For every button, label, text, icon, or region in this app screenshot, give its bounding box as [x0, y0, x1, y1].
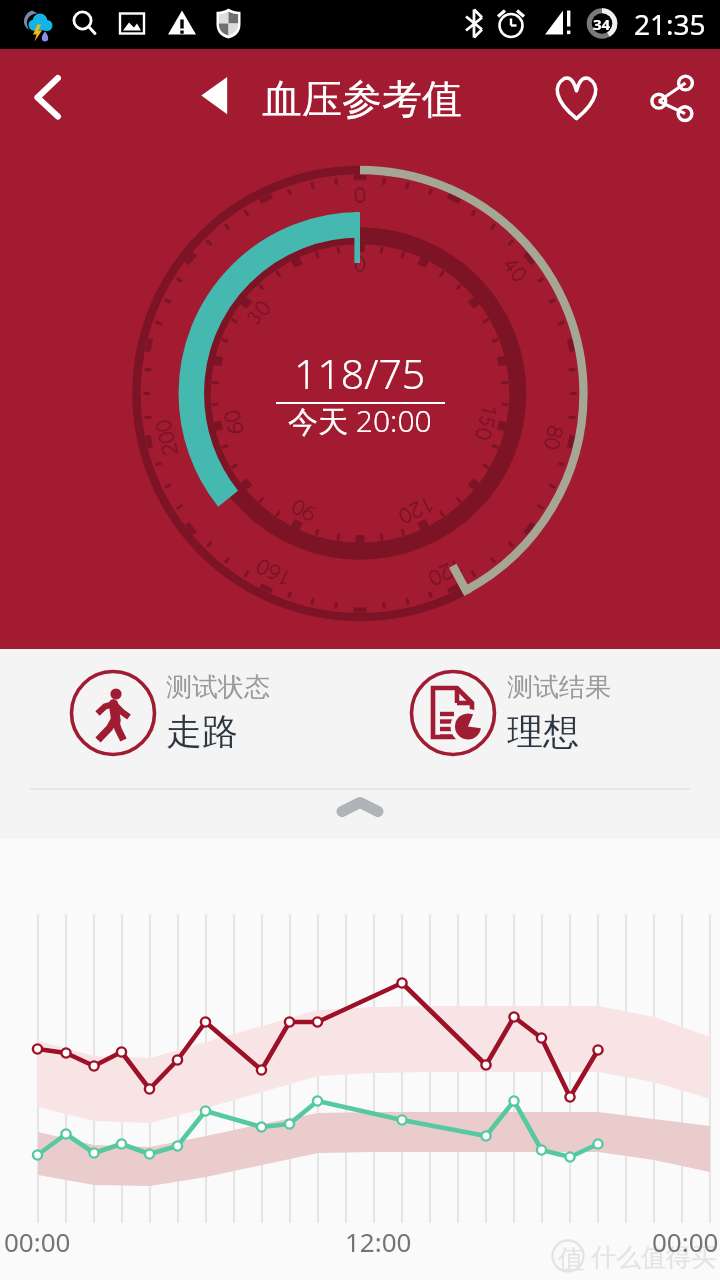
button[interactable]: 测试状态: [65, 665, 161, 761]
staticText: 走路: [166, 709, 238, 754]
button[interactable]: 血压参考值: [190, 49, 475, 149]
staticText: 12:00: [345, 1224, 412, 1259]
staticText: 测试结果: [507, 671, 611, 704]
staticText: 118/75: [294, 345, 426, 401]
staticText: 血压参考值: [262, 74, 462, 124]
button[interactable]: Share: [627, 49, 717, 149]
staticText: 00:00: [652, 1224, 719, 1259]
button[interactable]: Collapse: [320, 792, 400, 822]
staticText: 理想: [507, 709, 579, 754]
staticText: 什么值得买: [591, 1242, 716, 1273]
staticText: 34: [593, 14, 611, 34]
staticText: 测试状态: [166, 671, 270, 704]
button[interactable]: Favorite: [531, 49, 621, 149]
button[interactable]: 测试结果: [405, 665, 501, 761]
staticText: 值: [558, 1243, 584, 1276]
staticText: 今天 20:00: [288, 400, 432, 441]
button[interactable]: Back: [4, 49, 92, 149]
staticText: 00:00: [4, 1224, 71, 1259]
staticText: 21:35: [634, 5, 706, 43]
